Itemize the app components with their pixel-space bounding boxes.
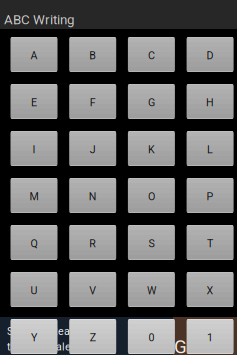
button[interactable]: G (128, 84, 175, 119)
staticText: A (30, 49, 37, 62)
button[interactable]: N (69, 178, 116, 213)
button[interactable]: F (69, 84, 116, 119)
button[interactable]: W (128, 272, 175, 307)
staticText: U (30, 284, 37, 297)
staticText: G (148, 96, 155, 109)
staticText: W (147, 284, 156, 297)
button[interactable]: J (69, 131, 116, 166)
button[interactable]: H (187, 84, 234, 119)
staticText: M (29, 190, 38, 203)
button[interactable]: R (69, 225, 116, 260)
staticText: J (90, 143, 96, 156)
button[interactable]: 0 (128, 319, 175, 354)
staticText: H (206, 96, 214, 109)
button[interactable]: K (128, 131, 175, 166)
staticText: 1 (207, 331, 213, 344)
staticText: B (89, 49, 96, 62)
button[interactable]: Y (10, 319, 57, 354)
staticText: Y (31, 331, 37, 344)
staticText: L (207, 143, 213, 156)
button[interactable]: B (69, 37, 116, 72)
button[interactable]: Z (69, 319, 116, 354)
staticText: Z (90, 331, 96, 344)
staticText: C (148, 49, 155, 62)
staticText: D (207, 49, 214, 62)
button[interactable]: Q (10, 225, 57, 260)
staticText: through Sales (7, 340, 77, 353)
button[interactable]: L (187, 131, 234, 166)
button[interactable]: A (10, 37, 57, 72)
button[interactable]: D (187, 37, 234, 72)
button[interactable]: X (187, 272, 234, 307)
staticText: R (89, 237, 96, 250)
staticText: N (89, 190, 97, 203)
staticText: I (32, 143, 35, 156)
staticText: V (89, 284, 96, 297)
staticText: Q (30, 237, 37, 250)
button[interactable]: T (187, 225, 234, 260)
staticText: ABC Writing (4, 12, 74, 28)
staticText: P (207, 190, 214, 203)
staticText: Sell low Reach (7, 325, 82, 337)
staticText: F (90, 96, 96, 109)
button[interactable]: V (69, 272, 116, 307)
button[interactable]: C (128, 37, 175, 72)
button[interactable]: S (128, 225, 175, 260)
button[interactable]: E (10, 84, 57, 119)
button[interactable]: M (10, 178, 57, 213)
button[interactable]: I (10, 131, 57, 166)
staticText: T (207, 237, 213, 250)
staticText: K (148, 143, 155, 156)
button[interactable]: P (187, 178, 234, 213)
button[interactable]: U (10, 272, 57, 307)
staticText: X (207, 284, 214, 297)
staticText: E (31, 96, 37, 109)
staticText: S (148, 237, 154, 250)
staticText: Go (174, 336, 198, 355)
button[interactable]: O (128, 178, 175, 213)
button[interactable]: 1 (187, 319, 234, 354)
staticText: O (148, 190, 155, 203)
staticText: 0 (148, 331, 154, 344)
